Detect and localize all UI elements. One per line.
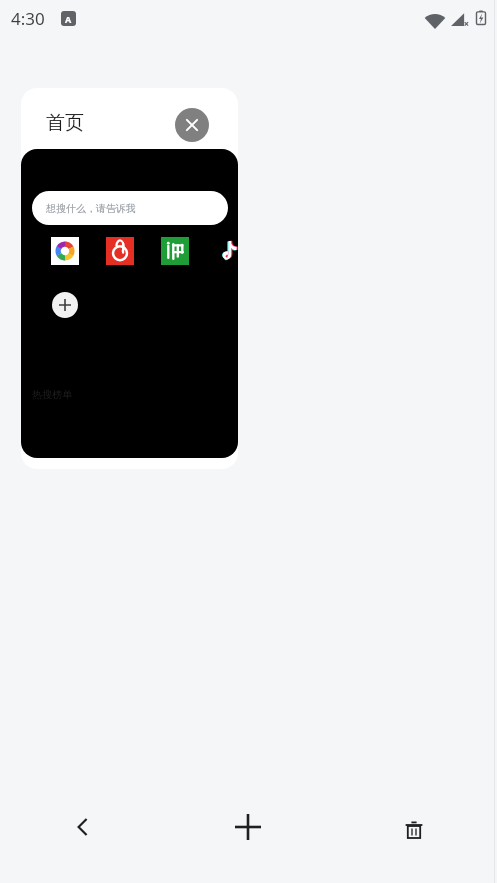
staticText: 首页 [46, 111, 84, 135]
button[interactable]: Close [175, 108, 209, 142]
button[interactable]: Add [220, 799, 276, 855]
button[interactable]: Douyin [215, 237, 238, 265]
button[interactable]: Delete [386, 802, 442, 858]
button[interactable]: 想搜什么，请告诉我 [32, 191, 228, 225]
button[interactable]: Music [106, 237, 134, 265]
staticText: 4:30 [11, 7, 45, 30]
staticText: 想搜什么，请告诉我 [46, 202, 136, 215]
button[interactable]: Photos [51, 237, 79, 265]
button[interactable]: Back [55, 799, 111, 855]
button[interactable]: Shopping [161, 237, 189, 265]
staticText: 热搜榜单 [32, 388, 72, 401]
staticText: A [65, 13, 72, 25]
button[interactable]: Add app [52, 292, 78, 318]
